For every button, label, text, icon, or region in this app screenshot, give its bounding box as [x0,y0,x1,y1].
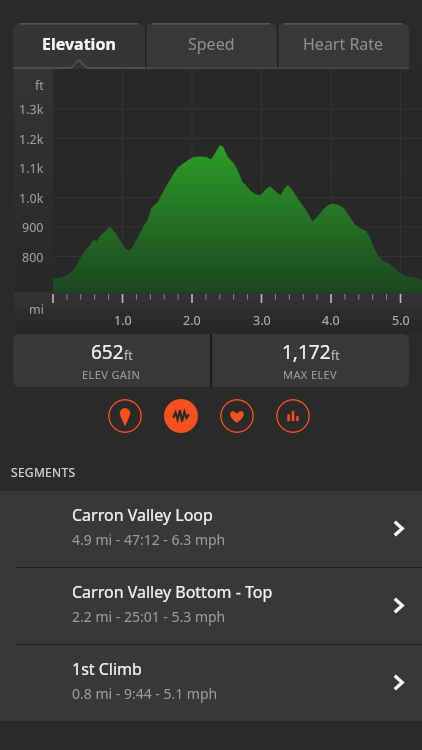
staticText: 1.3k [19,101,44,118]
staticText: 1,172 [282,339,331,365]
staticText: ft [331,347,340,363]
staticText: ft [35,77,44,94]
button[interactable]: Heart rate [220,399,254,433]
staticText: 2.0 [183,312,201,329]
button[interactable]: 1,172 [212,334,409,387]
button[interactable]: Carron Valley Bottom - Top [0,568,422,644]
button[interactable]: 1st Climb [0,645,422,721]
staticText: 800 [22,249,44,266]
staticText: 4.0 [322,312,340,329]
button[interactable]: 652 [13,334,210,387]
staticText: 1st Climb [72,658,142,680]
staticText: 1.2k [19,131,44,148]
button[interactable]: Carron Valley Loop [0,491,422,567]
button[interactable]: Analysis [164,399,198,433]
staticText: Elevation [42,33,116,55]
button[interactable]: Splits [276,399,310,433]
staticText: 1.0k [19,190,44,207]
staticText: Speed [188,33,235,55]
button[interactable]: Map [108,399,142,433]
staticText: 2.2 mi - 25:01 - 5.3 mph [72,607,226,626]
staticText: 3.0 [253,312,271,329]
staticText: mi [29,301,44,318]
button[interactable]: Heart Rate [277,23,409,69]
staticText: 652 [91,339,124,365]
staticText: 0.8 mi - 9:44 - 5.1 mph [72,684,218,703]
staticText: Carron Valley Bottom - Top [72,581,273,603]
staticText: 1.1k [19,160,44,177]
staticText: ft [124,347,133,363]
button[interactable]: Elevation [13,23,145,69]
staticText: 900 [22,219,44,236]
staticText: Carron Valley Loop [72,504,213,526]
staticText: 4.9 mi - 47:12 - 6.3 mph [72,530,226,549]
staticText: SEGMENTS [11,464,76,480]
staticText: 1.0 [114,312,132,329]
staticText: 5.0 [392,312,410,329]
staticText: Heart Rate [303,33,384,55]
staticText: MAX ELEV [283,367,338,382]
button[interactable]: Speed [145,23,277,69]
staticText: ELEV GAIN [82,367,141,382]
